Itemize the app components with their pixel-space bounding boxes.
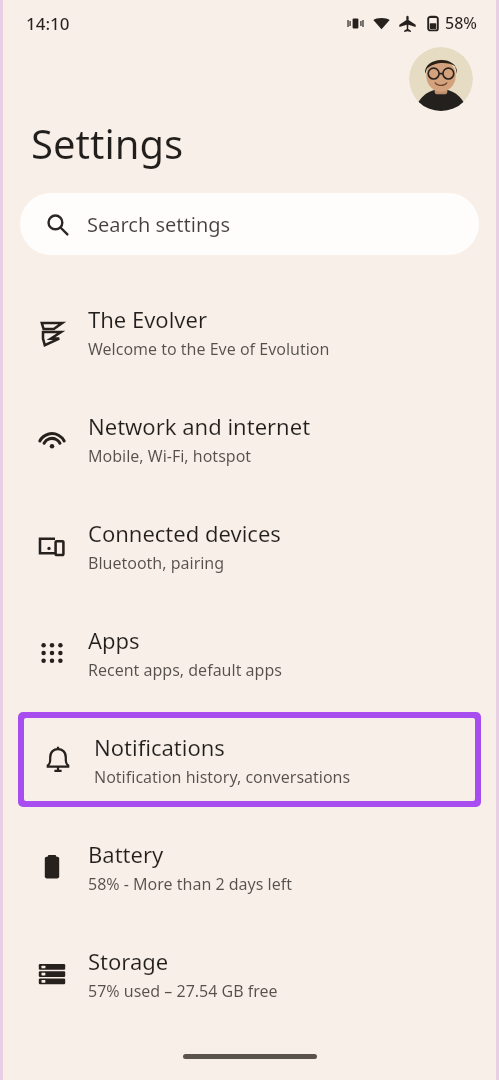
staticText: Welcome to the Eve of Evolution [88, 338, 330, 360]
staticText: Battery [88, 839, 164, 869]
button[interactable]: Network and internet [0, 385, 499, 492]
button[interactable]: Connected devices [0, 492, 499, 599]
staticText: Recent apps, default apps [88, 659, 282, 681]
staticText: Notifications [94, 732, 225, 762]
staticText: Search settings [87, 211, 231, 238]
button[interactable]: Apps [0, 599, 499, 706]
button[interactable]: Account profile [409, 47, 473, 111]
staticText: Notification history, conversations [94, 766, 351, 788]
staticText: Settings [31, 116, 184, 170]
staticText: Apps [88, 625, 140, 655]
staticText: The Evolver [88, 304, 208, 334]
staticText: 14:10 [26, 12, 70, 35]
staticText: 57% used – 27.54 GB free [88, 980, 278, 1002]
button[interactable]: Storage [0, 920, 499, 1027]
button[interactable]: Search settings [20, 193, 479, 255]
button[interactable]: The Evolver [0, 278, 499, 385]
staticText: Bluetooth, pairing [88, 552, 225, 574]
staticText: 58% - More than 2 days left [88, 873, 292, 895]
staticText: Network and internet [88, 411, 311, 441]
button[interactable]: Battery [0, 813, 499, 920]
staticText: Connected devices [88, 518, 281, 548]
button[interactable]: Notifications [24, 718, 475, 801]
staticText: 58% [445, 12, 477, 34]
staticText: Storage [88, 946, 169, 976]
staticText: Mobile, Wi-Fi, hotspot [88, 445, 252, 467]
